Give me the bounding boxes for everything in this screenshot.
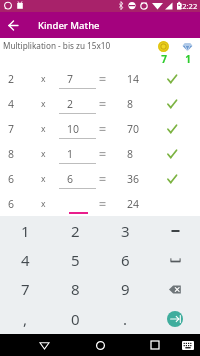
staticText: 4 (8, 97, 15, 111)
staticText: 24 (127, 197, 140, 211)
button[interactable]: 7 (0, 116, 200, 141)
staticText: 2 (8, 72, 15, 86)
button[interactable]: , (0, 304, 50, 334)
staticText: 8 (71, 279, 80, 299)
staticText: x (41, 73, 46, 85)
staticText: 4 (21, 250, 30, 270)
button[interactable]: Minus (150, 216, 200, 245)
staticText: 8 (127, 147, 134, 161)
staticText: 1 (185, 52, 191, 66)
button[interactable]: 7 (0, 274, 50, 304)
button[interactable]: 8 (0, 141, 200, 166)
staticText: 5 (71, 250, 80, 270)
button[interactable]: Gems (176, 41, 198, 66)
staticText: , (23, 309, 28, 329)
button[interactable]: Enter (150, 304, 200, 334)
button[interactable]: 6 (0, 166, 200, 191)
staticText: 7 (67, 72, 74, 86)
button[interactable]: 6 (100, 245, 150, 274)
button[interactable]: 6 (0, 191, 200, 216)
staticText: 6 (67, 172, 74, 186)
button[interactable]: 3 (100, 216, 150, 245)
staticText: x (41, 123, 46, 135)
button[interactable]: Delete (150, 274, 200, 304)
button[interactable]: Coins (152, 41, 174, 66)
button[interactable]: 0 (50, 304, 100, 334)
staticText: Kinder Mathe (38, 19, 100, 32)
staticText: 14 (127, 72, 140, 86)
button[interactable]: Home (88, 334, 112, 356)
button[interactable]: 4 (0, 91, 200, 116)
button[interactable]: Recent apps (143, 334, 167, 356)
button[interactable]: 4 (0, 245, 50, 274)
staticText: 10 (67, 122, 80, 136)
button[interactable]: 9 (100, 274, 150, 304)
staticText: x (41, 98, 46, 110)
staticText: x (41, 198, 46, 210)
staticText: 6 (121, 250, 130, 270)
staticText: 1 (21, 221, 30, 241)
staticText: 7 (21, 279, 30, 299)
staticText: 9 (121, 279, 130, 299)
staticText: Multiplikation - bis zu 15x10 (3, 40, 111, 51)
staticText: 22:22 (178, 1, 198, 11)
staticText: x (41, 173, 46, 185)
button[interactable]: Switch keyboard (176, 334, 200, 356)
button[interactable]: 5 (50, 245, 100, 274)
staticText: 7 (161, 52, 167, 66)
staticText: 8 (127, 97, 134, 111)
button[interactable]: 8 (50, 274, 100, 304)
button[interactable]: 1 (0, 216, 50, 245)
staticText: 6 (8, 197, 15, 211)
staticText: 3 (121, 221, 130, 241)
staticText: x (41, 148, 46, 160)
staticText: 8 (8, 147, 15, 161)
button[interactable]: Back (0, 12, 26, 38)
staticText: 70 (127, 122, 140, 136)
staticText: 2 (67, 97, 74, 111)
button[interactable]: . (100, 304, 150, 334)
other: Enter (167, 311, 183, 327)
staticText: 0 (71, 309, 80, 329)
button[interactable]: Space (150, 245, 200, 274)
staticText: 36 (127, 172, 140, 186)
staticText: . (123, 309, 128, 329)
button[interactable]: 2 (50, 216, 100, 245)
staticText: 1 (67, 147, 74, 161)
staticText: 6 (8, 172, 15, 186)
button[interactable]: 2 (0, 66, 200, 91)
staticText: 7 (8, 122, 15, 136)
button[interactable]: Back (32, 334, 56, 356)
staticText: 2 (71, 221, 80, 241)
